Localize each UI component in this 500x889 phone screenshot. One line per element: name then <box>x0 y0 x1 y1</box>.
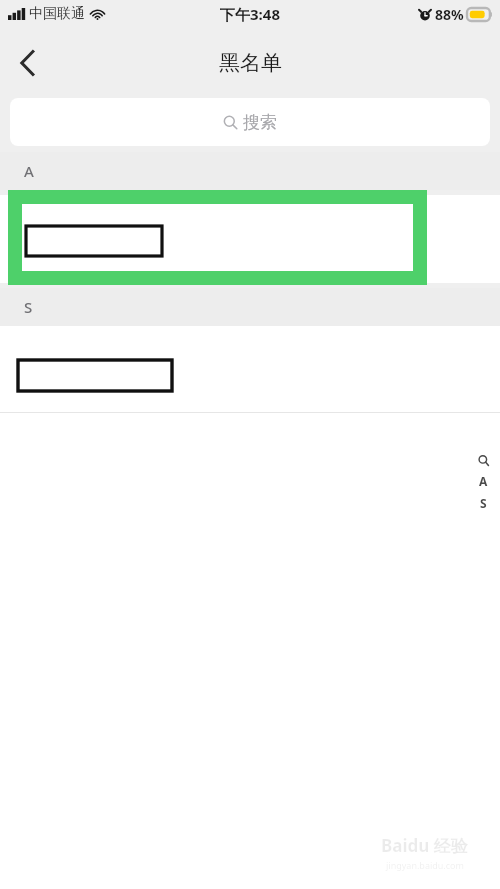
button[interactable]: Alphabet index <box>472 455 494 511</box>
staticText: 黑名单 <box>219 50 282 76</box>
staticText: 搜索 <box>243 112 277 133</box>
staticText: S <box>480 495 487 511</box>
staticText: 中国联通 <box>29 5 85 23</box>
staticText: 88% <box>435 5 464 24</box>
button[interactable]: 搜索 <box>10 98 490 146</box>
button[interactable] <box>0 326 500 412</box>
button[interactable]: Back <box>0 36 54 90</box>
staticText: S <box>24 297 33 317</box>
button[interactable] <box>0 195 500 283</box>
staticText: A <box>24 161 34 181</box>
staticText: A <box>479 473 488 489</box>
staticText: jingyan.baidu.com <box>386 859 464 871</box>
staticText: Baidu 经验 <box>381 834 468 857</box>
staticText: 下午3:48 <box>220 4 280 24</box>
